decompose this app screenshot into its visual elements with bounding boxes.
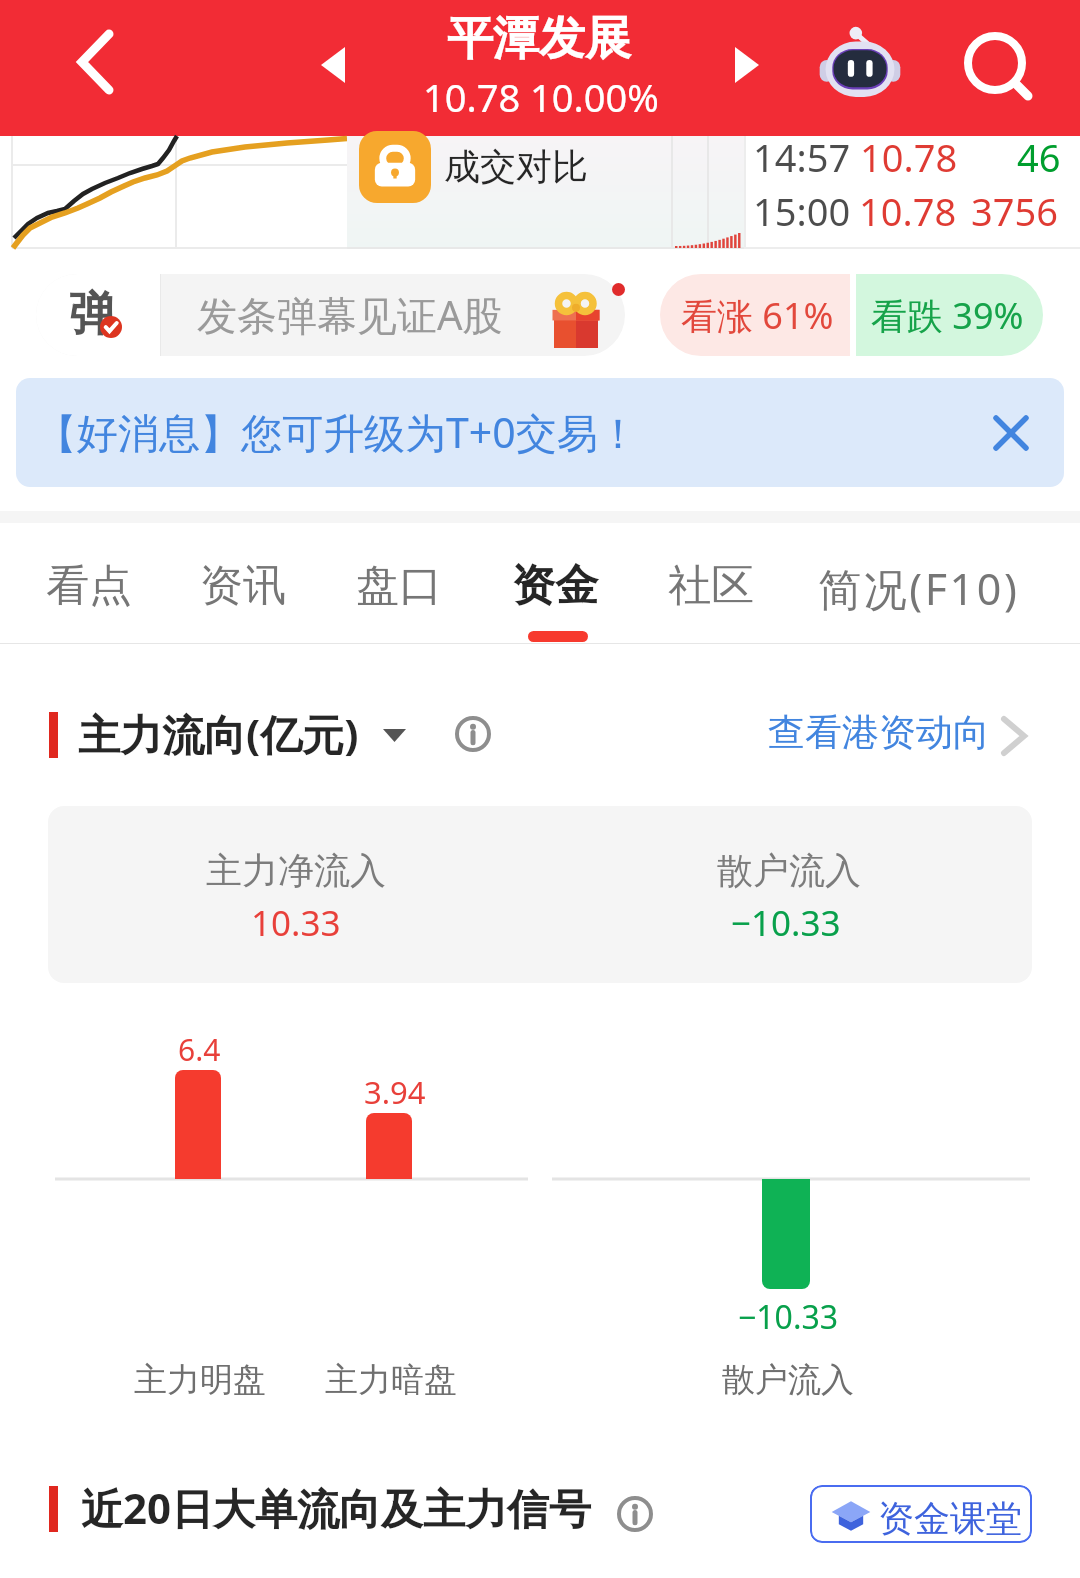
- staticText: 10.33: [251, 899, 341, 947]
- staticText: 简况(F10): [818, 559, 1020, 618]
- staticText: 成交对比: [444, 144, 588, 189]
- staticText: −10.33: [738, 1295, 839, 1339]
- button[interactable]: Previous stock: [297, 23, 369, 107]
- staticText: 6.4: [178, 1029, 221, 1070]
- staticText: 平潭发展: [447, 10, 631, 68]
- staticText: 社区: [668, 559, 754, 613]
- staticText: −10.33: [731, 899, 841, 947]
- staticText: 3.94: [364, 1071, 426, 1113]
- staticText: 查看港资动向: [768, 709, 990, 756]
- button[interactable]: 查看港资动向: [760, 698, 1035, 768]
- staticText: 发条弹幕见证A股: [197, 287, 503, 342]
- staticText: 【好消息】您可升级为T+0交易！: [36, 404, 639, 460]
- button[interactable]: 看点: [25, 523, 154, 641]
- button[interactable]: AI assistant: [818, 18, 902, 102]
- staticText: 散户流入: [722, 1359, 854, 1401]
- button[interactable]: [48, 806, 540, 983]
- staticText: 10.78: [859, 185, 957, 237]
- staticText: 10.78: [860, 131, 958, 183]
- staticText: 主力净流入: [206, 848, 386, 893]
- button[interactable]: 弹: [36, 274, 625, 356]
- staticText: 10.78 10.00%: [423, 71, 659, 123]
- button[interactable]: Close: [982, 404, 1040, 462]
- staticText: 3756: [971, 185, 1058, 237]
- staticText: 看涨 61%: [681, 291, 834, 340]
- staticText: 看跌 39%: [871, 291, 1024, 340]
- staticText: 资金课堂: [878, 1496, 1022, 1541]
- button[interactable]: Back: [54, 12, 144, 122]
- staticText: 主力明盘: [134, 1359, 266, 1401]
- staticText: 14:57: [753, 131, 851, 183]
- staticText: 主力暗盘: [325, 1359, 457, 1401]
- button[interactable]: 社区: [647, 523, 776, 641]
- button[interactable]: Info: [617, 1496, 653, 1532]
- button[interactable]: Info: [455, 716, 491, 752]
- staticText: 盘口: [356, 559, 442, 613]
- button[interactable]: 资讯: [179, 523, 308, 641]
- staticText: 46: [1017, 131, 1061, 183]
- staticText: 资金: [512, 559, 598, 613]
- button[interactable]: Search: [950, 17, 1040, 107]
- button[interactable]: 盘口: [335, 523, 464, 641]
- staticText: 弹: [69, 285, 116, 344]
- button[interactable]: 看涨 61%: [660, 274, 1043, 356]
- staticText: 散户流入: [717, 848, 861, 893]
- button[interactable]: 资金课堂: [810, 1485, 1032, 1543]
- button[interactable]: Next stock: [711, 23, 783, 107]
- button[interactable]: 简况(F10): [797, 523, 1023, 641]
- staticText: 资讯: [200, 559, 286, 613]
- button[interactable]: [540, 806, 1032, 983]
- staticText: 近20日大单流向及主力信号: [81, 1479, 592, 1536]
- staticText: 15:00: [753, 185, 851, 237]
- staticText: 主力流向(亿元): [78, 705, 359, 762]
- staticText: 看点: [46, 559, 132, 613]
- button[interactable]: 资金: [491, 523, 620, 641]
- button[interactable]: 【好消息】您可升级为T+0交易！: [16, 378, 1064, 487]
